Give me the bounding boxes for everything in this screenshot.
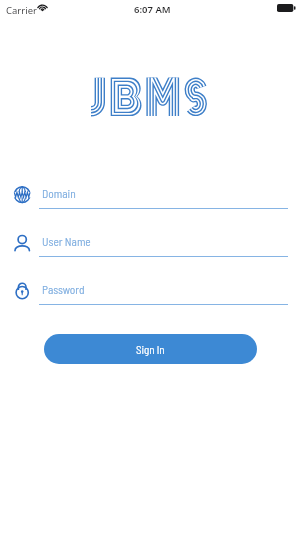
- button[interactable]: Sign In: [44, 334, 257, 364]
- staticText: Password: [42, 282, 85, 296]
- button[interactable]: Password: [0, 276, 300, 308]
- staticText: User Name: [42, 234, 91, 248]
- staticText: Carrier: [6, 4, 37, 17]
- staticText: 6:07 AM: [134, 3, 171, 16]
- button[interactable]: User Name: [0, 228, 300, 260]
- staticText: Sign In: [136, 343, 165, 356]
- staticText: Domain: [42, 186, 76, 200]
- button[interactable]: Domain: [0, 180, 300, 212]
